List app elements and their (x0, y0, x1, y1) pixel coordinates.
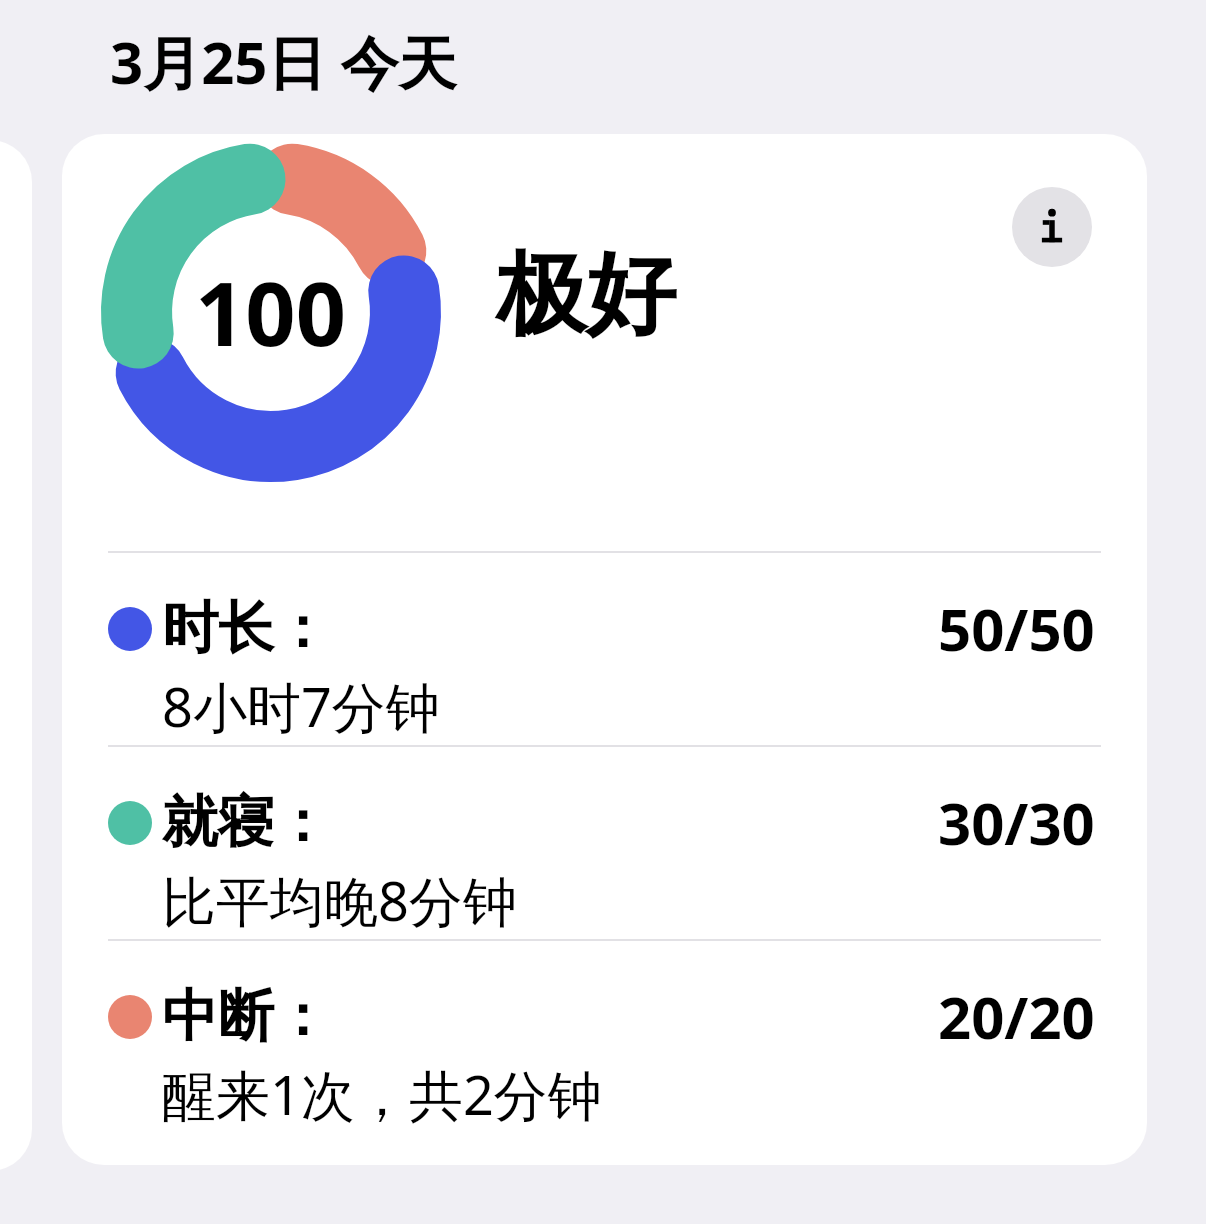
staticText: 50/50 (938, 589, 1095, 668)
staticText: 30/30 (938, 783, 1095, 862)
staticText: 比平均晚8分钟 (162, 863, 517, 937)
button[interactable]: 信息 (62, 134, 1147, 1165)
staticText: 极好 (496, 238, 676, 351)
staticText: 就寝： (162, 787, 330, 858)
staticText: 中断： (162, 981, 330, 1052)
staticText: 20/20 (938, 977, 1095, 1056)
staticText: 时长： (162, 593, 330, 664)
staticText: 8小时7分钟 (162, 669, 440, 743)
button[interactable]: 时长： (62, 553, 1147, 745)
button[interactable]: 信息 (1012, 187, 1092, 267)
button[interactable]: 中断： (62, 941, 1147, 1133)
button[interactable]: 就寝： (62, 747, 1147, 939)
staticText: 醒来1次，共2分钟 (162, 1057, 602, 1131)
staticText: 3月25日 今天 (110, 22, 457, 101)
staticText: 100 (195, 252, 347, 372)
